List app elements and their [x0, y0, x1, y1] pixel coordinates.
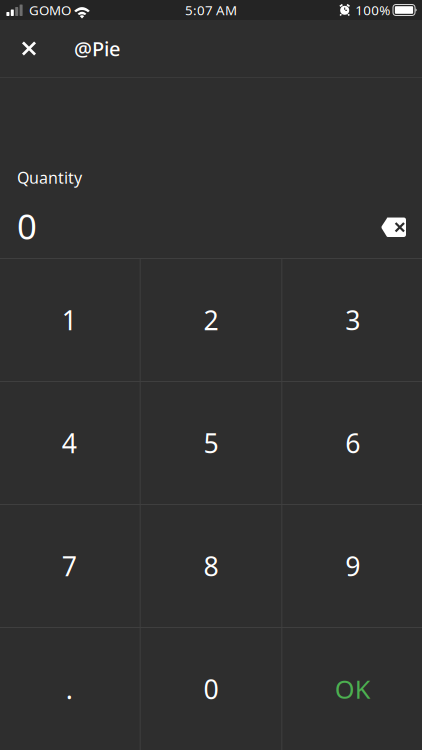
button[interactable]: 1 [0, 258, 140, 381]
button[interactable]: Close [7, 20, 51, 77]
staticText: 100% [355, 1, 390, 19]
button[interactable]: 9 [282, 504, 422, 627]
staticText: 3 [345, 302, 360, 338]
staticText: Quantity [17, 167, 82, 188]
button[interactable]: OK [282, 627, 422, 750]
button[interactable]: 2 [141, 258, 281, 381]
button[interactable]: 3 [282, 258, 422, 381]
button[interactable]: 0 [141, 627, 281, 750]
staticText: 0 [17, 203, 37, 249]
staticText: 4 [62, 425, 77, 461]
staticText: 2 [203, 302, 218, 338]
staticText: 7 [62, 548, 77, 584]
button[interactable]: . [0, 627, 140, 750]
button[interactable]: 7 [0, 504, 140, 627]
staticText: 8 [203, 548, 218, 584]
button[interactable]: 5 [141, 381, 281, 504]
staticText: 0 [203, 671, 218, 707]
staticText: GOMO [29, 1, 71, 19]
staticText: 6 [345, 425, 360, 461]
staticText: 5 [203, 425, 218, 461]
staticText: OK [335, 672, 371, 706]
staticText: 1 [62, 302, 77, 338]
button[interactable]: Delete [364, 218, 406, 249]
staticText: @Pie [74, 35, 120, 62]
staticText: . [66, 671, 73, 707]
button[interactable]: 4 [0, 381, 140, 504]
staticText: 5:07 AM [185, 1, 237, 19]
button[interactable]: 6 [282, 381, 422, 504]
button[interactable]: 8 [141, 504, 281, 627]
staticText: 9 [345, 548, 360, 584]
